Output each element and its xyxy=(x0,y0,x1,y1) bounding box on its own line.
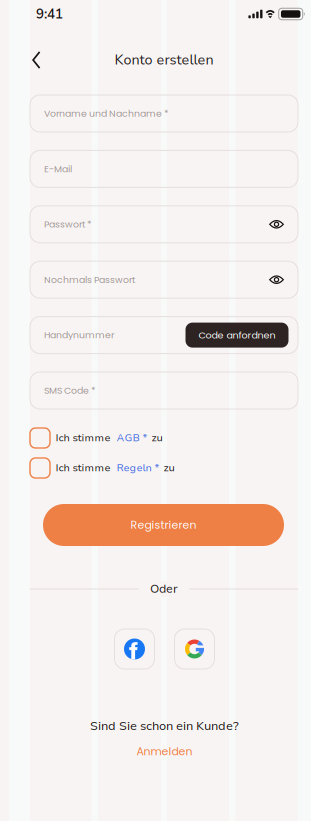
staticText: * xyxy=(142,431,147,445)
staticText: Oder xyxy=(150,581,178,597)
button[interactable]: Continue with Facebook xyxy=(114,629,154,669)
staticText: zu xyxy=(151,431,162,445)
button[interactable]: Registrieren xyxy=(43,504,284,546)
staticText: Sind Sie schon ein Kunde? xyxy=(90,718,239,734)
staticText: Handynummer xyxy=(44,329,114,342)
button[interactable]: Anmelden xyxy=(108,734,202,759)
staticText: Nochmals Passwort xyxy=(44,273,135,286)
staticText: SMS Code * xyxy=(44,384,96,397)
staticText: zu xyxy=(163,461,174,475)
button[interactable]: Code anfordnen xyxy=(185,323,288,348)
staticText: Code anfordnen xyxy=(198,328,275,342)
staticText: Konto erstellen xyxy=(114,50,213,69)
button[interactable]: Show password xyxy=(269,208,298,241)
staticText: Ich stimme xyxy=(55,431,110,445)
staticText: Ich stimme xyxy=(55,461,110,475)
staticText: Regeln xyxy=(116,461,151,475)
staticText: Passwort * xyxy=(44,218,92,231)
staticText: Anmelden xyxy=(136,744,192,759)
staticText: 9:41 xyxy=(36,5,63,23)
button[interactable]: Ich stimme xyxy=(30,458,298,478)
button[interactable]: Continue with Google xyxy=(174,629,214,669)
staticText: AGB xyxy=(116,431,139,445)
staticText: * xyxy=(154,461,159,475)
staticText: Registrieren xyxy=(130,517,196,533)
staticText: E-Mail xyxy=(44,162,72,175)
button[interactable]: Ich stimme xyxy=(30,428,298,448)
staticText: Vorname und Nachname * xyxy=(44,107,169,120)
button[interactable]: Back xyxy=(0,42,57,78)
button[interactable]: Show password xyxy=(269,263,298,296)
